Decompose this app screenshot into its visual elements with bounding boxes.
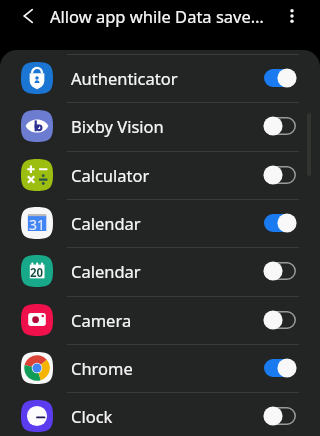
button[interactable]: Calculator: [0, 151, 320, 199]
staticText: 31: [29, 215, 46, 234]
button[interactable]: Navigate up: [0, 0, 44, 31]
button[interactable]: 31: [0, 199, 320, 247]
staticText: Clock: [71, 405, 113, 427]
staticText: Authenticator: [71, 67, 178, 89]
staticText: Calendar: [71, 260, 141, 282]
button[interactable]: Authenticator: [0, 54, 320, 102]
staticText: Camera: [71, 309, 132, 331]
staticText: Calendar: [71, 212, 141, 234]
button[interactable]: Bixby Vision: [0, 102, 320, 150]
button[interactable]: Camera: [0, 296, 320, 344]
button[interactable]: Clock: [0, 392, 320, 436]
staticText: 20: [30, 265, 44, 281]
staticText: Bixby Vision: [71, 115, 164, 137]
staticText: Allow app while Data save…: [50, 5, 264, 27]
staticText: Chrome: [71, 357, 133, 379]
button[interactable]: 20: [0, 247, 320, 295]
button[interactable]: More options: [275, 0, 309, 31]
staticText: Calculator: [71, 164, 150, 186]
button[interactable]: Chrome: [0, 344, 320, 392]
